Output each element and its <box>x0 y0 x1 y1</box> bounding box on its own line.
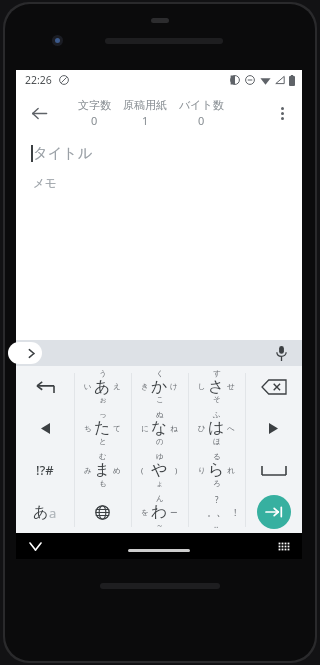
staticText: や <box>151 460 168 480</box>
button[interactable]: ん <box>131 491 188 533</box>
staticText: せ <box>227 382 235 391</box>
button[interactable]: る <box>188 449 245 491</box>
staticText: タイトル <box>33 144 93 162</box>
button[interactable]: む <box>74 449 131 491</box>
staticText: ほ <box>213 437 221 446</box>
staticText: 0 <box>198 113 205 128</box>
staticText: し <box>198 382 206 391</box>
staticText: を <box>141 508 149 517</box>
staticText: ろ <box>213 479 221 488</box>
button[interactable]: ふ <box>188 407 245 449</box>
staticText: そ <box>213 395 221 404</box>
staticText: は <box>208 418 225 438</box>
other: Move left <box>41 423 50 434</box>
staticText: ひ <box>198 424 206 433</box>
button[interactable]: !?# <box>16 449 74 491</box>
button[interactable]: す <box>188 366 245 407</box>
staticText: 22:26 <box>25 73 52 87</box>
staticText: 原稿用紙 <box>123 98 167 112</box>
staticText: め <box>113 466 121 475</box>
staticText: 。 <box>207 507 216 518</box>
staticText: わ <box>151 502 168 522</box>
button[interactable]: Move left <box>16 407 74 449</box>
staticText: ら <box>208 460 225 480</box>
staticText: く <box>156 369 164 378</box>
button[interactable]: ゆ <box>131 449 188 491</box>
staticText: ) <box>175 465 178 475</box>
staticText: り <box>198 466 206 475</box>
staticText: れ <box>227 466 235 475</box>
staticText: ? <box>215 494 219 505</box>
button[interactable]: 原稿用紙 <box>121 98 169 128</box>
button[interactable]: Switch input method <box>274 536 294 556</box>
staticText: 0 <box>91 113 98 128</box>
button[interactable]: Enter <box>257 495 291 529</box>
staticText: け <box>170 382 178 391</box>
button[interactable]: Expand suggestions <box>8 342 42 364</box>
staticText: て <box>113 424 121 433</box>
button[interactable]: Space <box>245 449 302 491</box>
button[interactable]: More options <box>264 95 300 131</box>
staticText: 、 <box>216 505 227 519</box>
staticText: あ <box>94 377 111 397</box>
staticText: き <box>141 382 149 391</box>
staticText: た <box>94 418 111 438</box>
staticText: あ <box>33 503 49 522</box>
staticText: 1 <box>142 113 149 128</box>
button[interactable]: Home <box>128 549 190 552</box>
button[interactable]: く <box>131 366 188 407</box>
staticText: な <box>151 418 168 438</box>
staticText: ～ <box>156 521 164 530</box>
staticText: ! <box>234 506 237 518</box>
button[interactable]: Hide keyboard <box>24 535 46 557</box>
staticText: ち <box>84 424 92 433</box>
button[interactable]: う <box>74 366 131 407</box>
staticText: い <box>84 382 92 391</box>
staticText: っ <box>99 410 107 419</box>
other: Delete <box>262 379 286 395</box>
staticText: こ <box>156 395 164 404</box>
staticText: む <box>99 452 107 461</box>
staticText: ね <box>170 424 178 433</box>
staticText: ー <box>170 508 178 517</box>
button[interactable]: Delete <box>245 366 302 407</box>
button[interactable]: あ <box>16 491 74 533</box>
staticText: ‥ <box>214 519 219 530</box>
staticText: ん <box>156 494 164 503</box>
button[interactable]: ? <box>188 491 245 533</box>
button[interactable]: ぬ <box>131 407 188 449</box>
button[interactable]: Voice input <box>270 342 292 364</box>
staticText: ぬ <box>156 410 164 419</box>
staticText: う <box>99 369 107 378</box>
staticText: さ <box>208 377 225 397</box>
button[interactable]: Change keyboard <box>74 491 131 533</box>
staticText: 文字数 <box>78 98 111 112</box>
button[interactable]: バイト数 <box>177 98 226 128</box>
staticText: に <box>141 424 149 433</box>
button[interactable]: Undo <box>16 366 74 407</box>
staticText: へ <box>227 424 235 433</box>
staticText: と <box>99 437 107 446</box>
staticText: も <box>99 479 107 488</box>
staticText: ま <box>94 460 111 480</box>
other: Space <box>262 466 286 475</box>
staticText: ぉ <box>99 395 107 404</box>
staticText: ふ <box>213 410 221 419</box>
staticText: る <box>213 452 221 461</box>
staticText: !?# <box>36 461 54 479</box>
other: Change keyboard <box>95 505 110 520</box>
button[interactable]: 文字数 <box>76 98 113 128</box>
button[interactable]: Enter <box>245 491 302 533</box>
staticText: ( <box>141 465 144 475</box>
staticText: バイト数 <box>179 98 224 112</box>
button[interactable]: っ <box>74 407 131 449</box>
staticText: a <box>49 504 57 522</box>
button[interactable]: Move right <box>245 407 302 449</box>
button[interactable]: Back <box>20 94 58 132</box>
staticText: の <box>156 437 164 446</box>
other: Undo <box>35 380 55 393</box>
staticText: え <box>113 382 121 391</box>
staticText: ゆ <box>156 452 164 461</box>
staticText: か <box>151 377 168 397</box>
staticText: メモ <box>33 176 57 190</box>
